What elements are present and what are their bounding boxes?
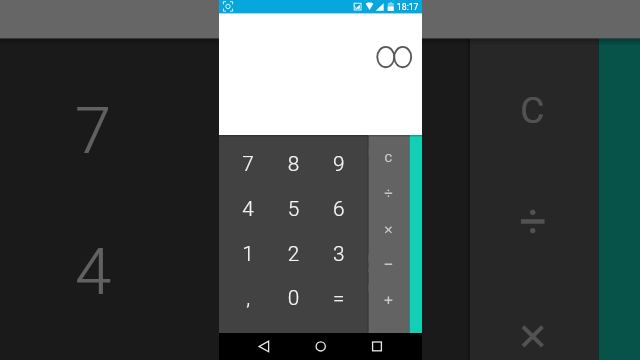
button[interactable]: 4 [219, 184, 268, 233]
button[interactable]: 7 [219, 135, 268, 184]
button[interactable]: Recent apps [354, 333, 422, 360]
button[interactable]: 1 [219, 233, 268, 283]
button[interactable]: Divide [368, 174, 409, 213]
button[interactable]: 2 [268, 233, 318, 283]
button[interactable]: Multiply [368, 213, 409, 253]
button[interactable]: Result display: infinity [219, 13, 422, 135]
button[interactable]: Add [368, 293, 409, 333]
button[interactable]: Clear [368, 135, 409, 174]
button[interactable]: 8 [268, 135, 318, 184]
button[interactable]: = [318, 283, 368, 333]
button[interactable]: Subtract [368, 253, 409, 293]
button[interactable]: 9 [318, 135, 368, 184]
button[interactable]: 6 [318, 184, 368, 233]
button[interactable]: 5 [268, 184, 318, 233]
button[interactable]: 0 [268, 283, 318, 333]
button[interactable]: Delete [409, 135, 422, 333]
button[interactable]: 3 [318, 233, 368, 283]
button[interactable]: Home [286, 333, 354, 360]
button[interactable]: Back [219, 333, 286, 360]
button[interactable]: , [219, 283, 268, 333]
